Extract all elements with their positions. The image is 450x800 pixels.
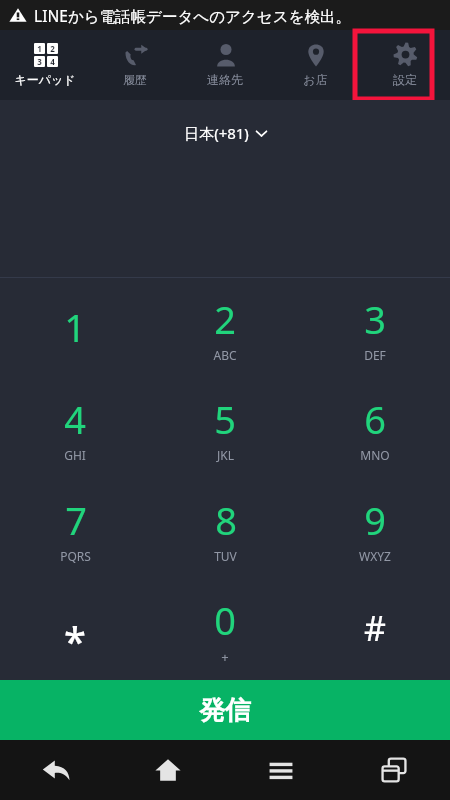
button[interactable]: 9	[300, 478, 450, 579]
staticText: 6	[364, 393, 386, 445]
button[interactable]: 3	[300, 278, 450, 378]
button[interactable]: 2	[150, 278, 300, 378]
button[interactable]: 発信	[0, 680, 450, 740]
staticText: PQRS	[60, 548, 91, 564]
staticText: 3	[37, 56, 42, 67]
button[interactable]: Back	[0, 740, 112, 800]
button[interactable]: 連絡先	[180, 30, 270, 100]
staticText: 2	[50, 43, 55, 54]
staticText: お店	[303, 72, 328, 87]
staticText: 8	[215, 494, 237, 546]
staticText: 連絡先	[207, 72, 243, 87]
staticText: 1	[37, 43, 42, 54]
button[interactable]: 6	[300, 378, 450, 478]
button[interactable]: 設定	[360, 30, 450, 100]
staticText: 設定	[393, 72, 417, 87]
button[interactable]: 1	[0, 30, 90, 100]
button[interactable]: #	[300, 579, 450, 680]
staticText: +	[221, 648, 229, 666]
staticText: 7	[65, 494, 87, 546]
staticText: 1	[64, 301, 86, 353]
staticText: 9	[364, 494, 386, 546]
button[interactable]: 7	[0, 478, 150, 579]
button[interactable]: 履歴	[90, 30, 180, 100]
button[interactable]: Recents	[337, 740, 450, 800]
staticText: 4	[50, 56, 55, 67]
staticText: 0	[214, 594, 236, 646]
staticText: *	[64, 613, 86, 667]
staticText: 2	[214, 293, 236, 345]
staticText: GHI	[64, 447, 86, 463]
button[interactable]: 4	[0, 378, 150, 478]
button[interactable]: 8	[150, 478, 300, 579]
button[interactable]: 5	[150, 378, 300, 478]
staticText: TUV	[214, 548, 237, 564]
button[interactable]: Home	[112, 740, 224, 800]
staticText: #	[364, 605, 386, 651]
staticText: 4	[64, 393, 86, 445]
staticText: DEF	[364, 347, 386, 363]
staticText: LINEから電話帳データへのアクセスを検出。	[34, 5, 351, 26]
staticText: MNO	[360, 447, 390, 463]
button[interactable]: *	[0, 579, 150, 680]
staticText: 日本(+81)	[184, 123, 249, 143]
staticText: キーパッド	[14, 72, 76, 87]
staticText: 3	[364, 293, 386, 345]
staticText: ABC	[213, 347, 237, 363]
staticText: 履歴	[123, 72, 147, 87]
button[interactable]: Menu	[224, 740, 337, 800]
button[interactable]: 1	[0, 278, 150, 378]
button[interactable]: お店	[270, 30, 360, 100]
staticText: WXYZ	[359, 548, 391, 564]
button[interactable]: 0	[150, 579, 300, 680]
button[interactable]: 日本(+81)	[184, 123, 267, 143]
staticText: 発信	[199, 694, 251, 727]
staticText: JKL	[217, 447, 234, 463]
staticText: 5	[214, 393, 236, 445]
